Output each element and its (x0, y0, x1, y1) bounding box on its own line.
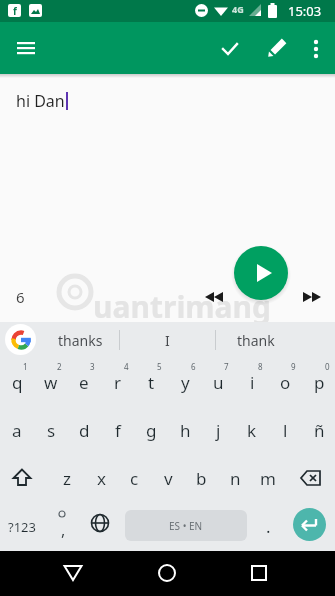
staticText: hi Dan (16, 90, 65, 112)
staticText: . (266, 515, 271, 538)
button[interactable]: ES • EN (125, 510, 247, 541)
button[interactable] (299, 469, 323, 487)
button[interactable]: o (268, 358, 302, 406)
staticText: 0 (325, 361, 330, 372)
staticText: ñ (314, 419, 325, 442)
button[interactable]: i (235, 358, 269, 406)
staticText: ES • EN (169, 519, 203, 533)
button[interactable]: d (67, 406, 101, 454)
staticText: i (250, 371, 255, 394)
staticText: e (79, 371, 89, 394)
button[interactable] (218, 37, 242, 61)
button[interactable]: a (0, 406, 34, 454)
button[interactable]: v (151, 454, 185, 502)
staticText: y (181, 371, 190, 394)
staticText: thank (237, 331, 275, 350)
staticText: s (47, 419, 56, 442)
button[interactable]: thank (216, 322, 296, 358)
button[interactable]: e (67, 358, 101, 406)
staticText: 7 (224, 361, 229, 372)
button[interactable]: s (34, 406, 68, 454)
button[interactable]: b (184, 454, 218, 502)
staticText: 5 (157, 361, 162, 372)
staticText: 3 (90, 361, 95, 372)
staticText: 1 (23, 361, 28, 372)
staticText: f (13, 4, 17, 17)
staticText: c (130, 467, 139, 490)
staticText: u (213, 371, 224, 394)
button[interactable]: ?123 (0, 502, 44, 551)
staticText: 4G (232, 3, 244, 15)
staticText: t (148, 371, 155, 394)
staticText: 9 (291, 361, 296, 372)
staticText: b (196, 467, 207, 490)
button[interactable]: t (134, 358, 168, 406)
button[interactable]: l (268, 406, 302, 454)
button[interactable]: g (134, 406, 168, 454)
button[interactable]: w (34, 358, 68, 406)
staticText: j (216, 419, 221, 442)
staticText: I (165, 331, 170, 350)
button[interactable] (62, 563, 84, 583)
staticText: x (97, 467, 106, 490)
staticText: v (164, 467, 173, 490)
button[interactable]: thanks (42, 322, 118, 358)
button[interactable]: u (201, 358, 235, 406)
button[interactable]: k (235, 406, 269, 454)
staticText: r (114, 371, 122, 394)
button[interactable]: z (50, 454, 84, 502)
staticText: q (12, 371, 23, 394)
button[interactable]: p (302, 358, 335, 406)
button[interactable] (264, 37, 288, 61)
staticText: h (180, 419, 191, 442)
button[interactable]: , (48, 508, 78, 551)
button[interactable] (156, 563, 178, 583)
staticText: k (247, 419, 257, 442)
button[interactable]: q (0, 358, 34, 406)
button[interactable]: r (101, 358, 135, 406)
button[interactable]: . (253, 502, 283, 551)
button[interactable]: j (201, 406, 235, 454)
staticText: thanks (58, 331, 103, 350)
button[interactable]: n (218, 454, 252, 502)
button[interactable] (10, 468, 34, 488)
staticText: p (314, 371, 325, 394)
staticText: 6 (191, 361, 196, 372)
staticText: 15:03 (288, 2, 322, 20)
button[interactable] (16, 38, 36, 58)
staticText: 6 (16, 287, 25, 307)
staticText: w (44, 371, 58, 394)
staticText: l (283, 419, 288, 442)
staticText: z (63, 467, 71, 490)
button[interactable] (302, 287, 322, 307)
staticText: a (12, 419, 22, 442)
button[interactable] (293, 508, 326, 541)
staticText: n (230, 467, 241, 490)
staticText: 8 (258, 361, 263, 372)
button[interactable] (234, 246, 288, 300)
staticText: uantrimang (93, 286, 272, 327)
staticText: 2 (57, 361, 62, 372)
staticText: g (146, 419, 157, 442)
button[interactable] (248, 563, 270, 583)
staticText: , (61, 519, 66, 541)
button[interactable]: x (84, 454, 118, 502)
button[interactable] (306, 37, 330, 61)
staticText: ?123 (8, 518, 36, 536)
button[interactable]: c (117, 454, 151, 502)
staticText: f (115, 419, 121, 442)
button[interactable]: f (101, 406, 135, 454)
button[interactable]: I (122, 322, 212, 358)
button[interactable]: h (168, 406, 202, 454)
staticText: o (280, 371, 291, 394)
staticText: 4 (124, 361, 129, 372)
button[interactable] (90, 513, 110, 533)
button[interactable] (5, 324, 36, 355)
staticText: d (79, 419, 90, 442)
button[interactable]: m (251, 454, 285, 502)
staticText: m (260, 467, 276, 490)
button[interactable]: y (168, 358, 202, 406)
button[interactable]: ñ (302, 406, 335, 454)
button[interactable] (205, 287, 225, 307)
